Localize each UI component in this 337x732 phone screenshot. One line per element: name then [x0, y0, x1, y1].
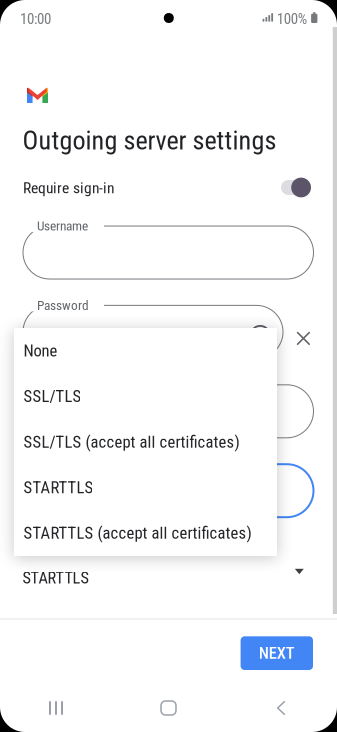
staticText: 100% — [277, 10, 307, 28]
button[interactable]: None — [14, 328, 277, 374]
button[interactable]: Recent apps — [0, 684, 112, 732]
button[interactable]: Server — [0, 0, 337, 732]
staticText: NEXT — [259, 643, 295, 663]
button[interactable]: STARTTLS (accept all certificates) — [14, 510, 277, 556]
staticText: STARTTLS (accept all certificates) — [23, 523, 251, 543]
staticText: STARTTLS — [23, 478, 93, 497]
button[interactable]: Password — [0, 0, 337, 732]
staticText: SSL/TLS — [23, 387, 81, 406]
staticText: 10:00 — [20, 10, 51, 28]
button[interactable]: Back — [225, 684, 337, 732]
staticText: Outgoing server settings — [22, 125, 276, 156]
button[interactable]: SSL/TLS (accept all certificates) — [14, 419, 277, 465]
button[interactable]: Username — [0, 0, 337, 732]
button[interactable]: Home — [112, 684, 225, 732]
staticText: Server — [37, 377, 70, 393]
staticText: Password — [37, 298, 89, 313]
staticText: STARTTLS — [22, 568, 88, 588]
staticText: Username — [37, 218, 88, 234]
button[interactable]: SSL/TLS — [14, 374, 277, 419]
button[interactable]: Close — [0, 0, 337, 732]
button[interactable]: STARTTLS — [14, 465, 277, 510]
button[interactable]: STARTTLS — [0, 0, 337, 732]
staticText: Require sign-in — [23, 179, 114, 197]
button[interactable]: Port — [0, 0, 337, 732]
staticText: SSL/TLS (accept all certificates) — [23, 432, 239, 452]
staticText: None — [23, 341, 57, 360]
button[interactable]: Show password — [0, 0, 337, 732]
button[interactable]: Require sign-in — [0, 0, 337, 732]
button[interactable]: NEXT — [0, 0, 337, 732]
